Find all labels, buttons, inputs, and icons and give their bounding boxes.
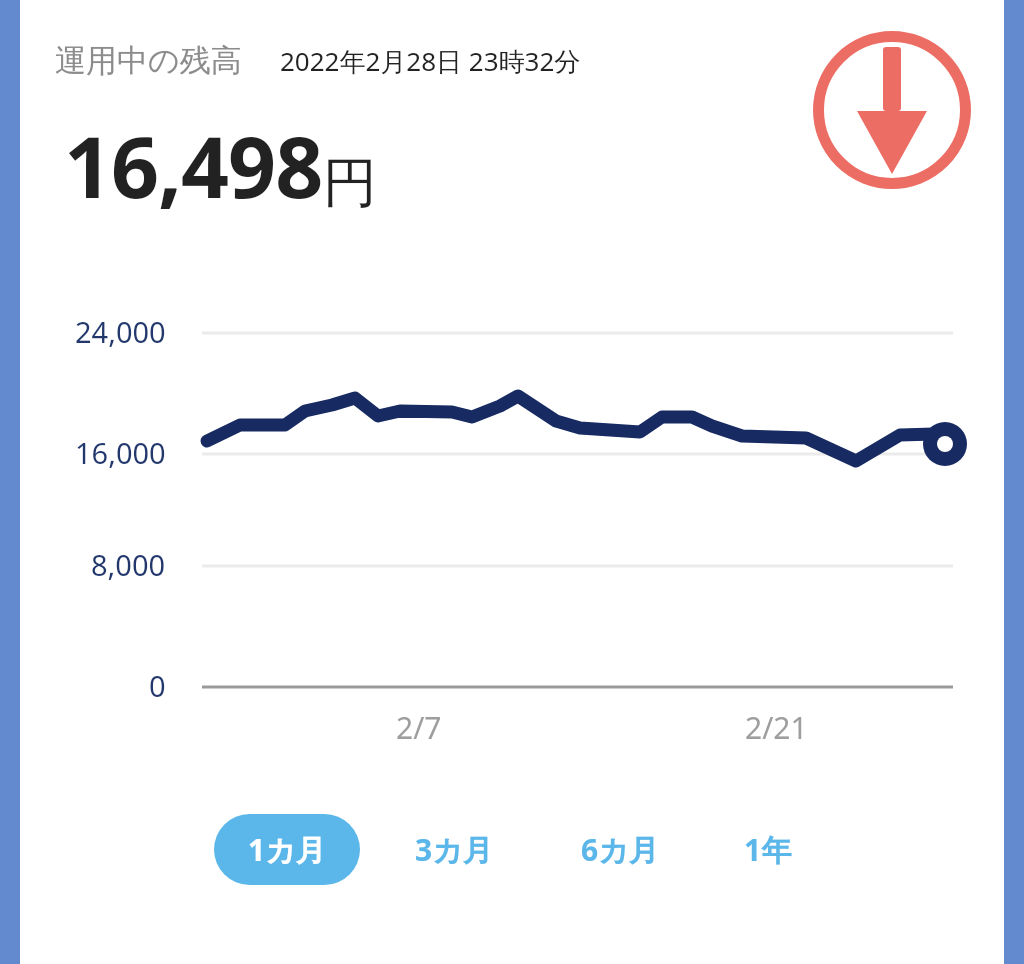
staticText: 8,000: [91, 545, 166, 584]
staticText: 3カ月: [415, 829, 493, 870]
staticText: 2/7: [396, 707, 442, 748]
staticText: 2022年2月28日 23時32分: [280, 43, 581, 79]
button[interactable]: 1年: [722, 814, 814, 885]
staticText: 0: [149, 666, 166, 705]
staticText: 24,000: [75, 312, 166, 351]
staticText: 16,498: [64, 108, 323, 222]
staticText: 1年: [744, 829, 792, 870]
staticText: 円: [323, 149, 377, 217]
staticText: 運用中の残高: [55, 41, 242, 80]
button[interactable]: 3カ月: [394, 814, 514, 885]
staticText: 16,000: [75, 433, 166, 472]
staticText: 6カ月: [581, 829, 659, 870]
button[interactable]: 出金: [813, 31, 971, 189]
staticText: 2/21: [745, 707, 808, 748]
staticText: 1カ月: [248, 829, 326, 870]
button[interactable]: 6カ月: [560, 814, 680, 885]
button[interactable]: 1カ月: [214, 814, 360, 885]
